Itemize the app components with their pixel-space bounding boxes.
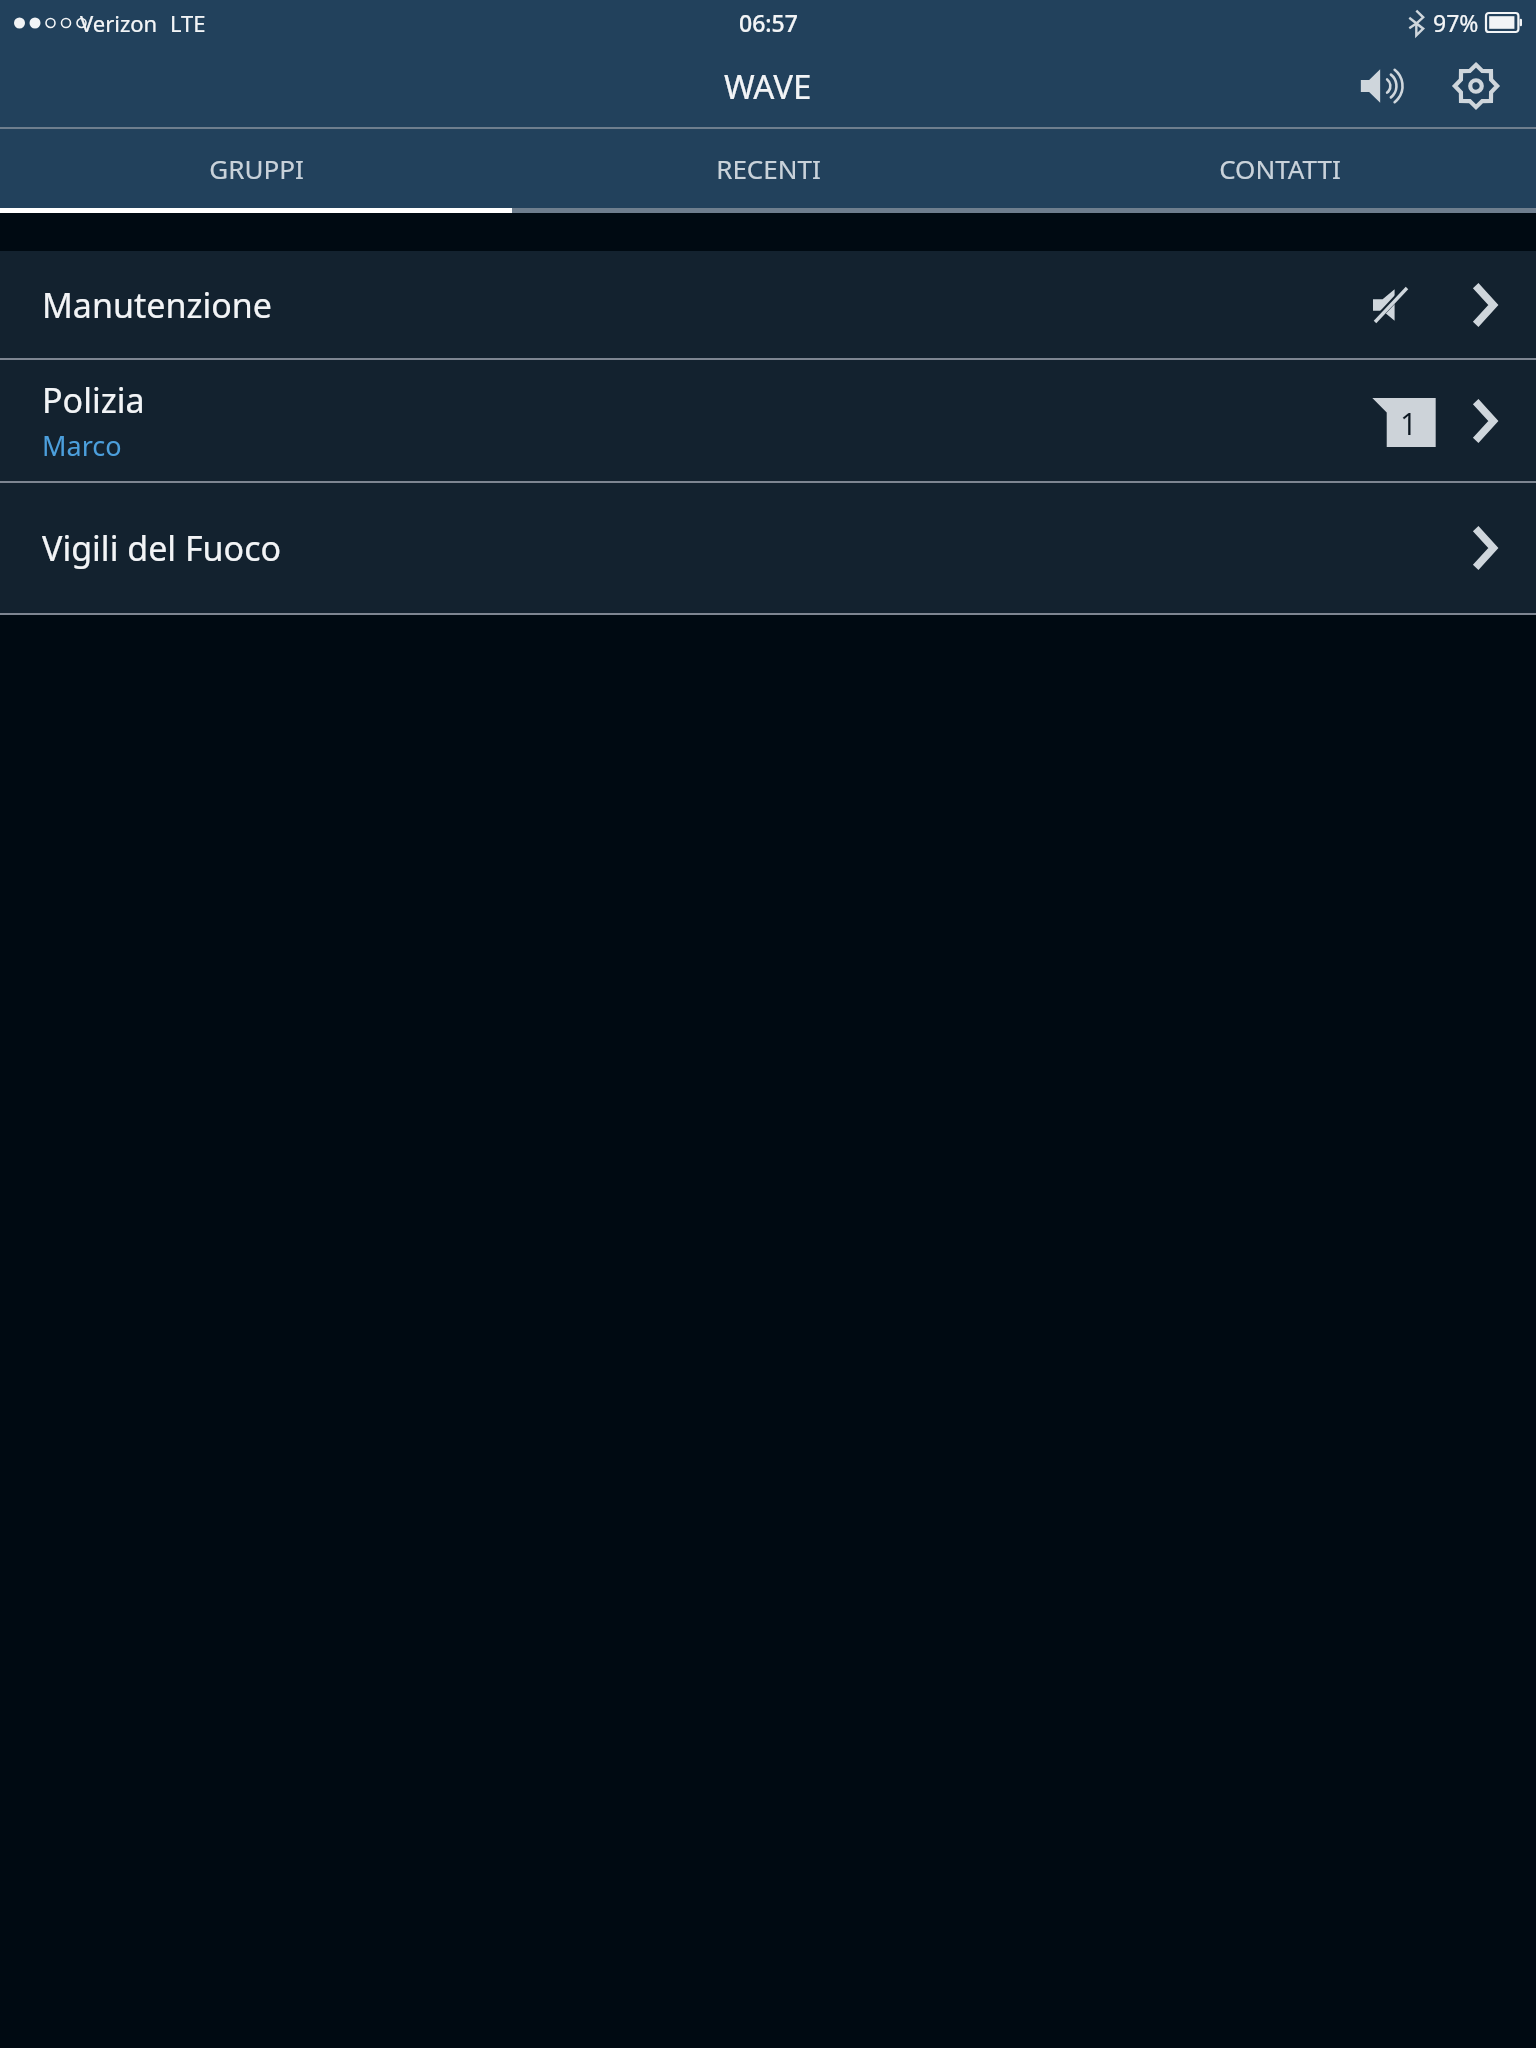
staticText: GRUPPI: [209, 151, 304, 186]
staticText: 97%: [1433, 7, 1479, 38]
button[interactable]: RECENTI: [512, 129, 1024, 208]
staticText: CONTATTI: [1219, 151, 1341, 186]
staticText: 1: [1400, 403, 1418, 444]
button[interactable]: Settings: [1440, 50, 1512, 122]
button[interactable]: Vigili del Fuoco: [0, 483, 1536, 613]
button[interactable]: GRUPPI: [0, 129, 512, 208]
other: Open Vigili del Fuoco: [1446, 510, 1522, 586]
staticText: Verizon: [80, 8, 158, 38]
staticText: WAVE: [724, 64, 812, 109]
button[interactable]: Polizia: [0, 360, 1536, 481]
button[interactable]: Volume: [1346, 50, 1418, 122]
staticText: LTE: [170, 8, 206, 38]
staticText: Marco: [42, 427, 122, 464]
staticText: Vigili del Fuoco: [42, 525, 282, 571]
other: Muted: [1354, 270, 1424, 340]
staticText: Polizia: [42, 377, 145, 423]
staticText: Manutenzione: [42, 282, 272, 328]
button[interactable]: CONTATTI: [1024, 129, 1536, 208]
staticText: RECENTI: [716, 151, 821, 186]
other: Open Polizia: [1446, 383, 1522, 459]
other: Open Manutenzione: [1446, 267, 1522, 343]
staticText: 06:57: [739, 7, 798, 38]
button[interactable]: Manutenzione: [0, 251, 1536, 358]
